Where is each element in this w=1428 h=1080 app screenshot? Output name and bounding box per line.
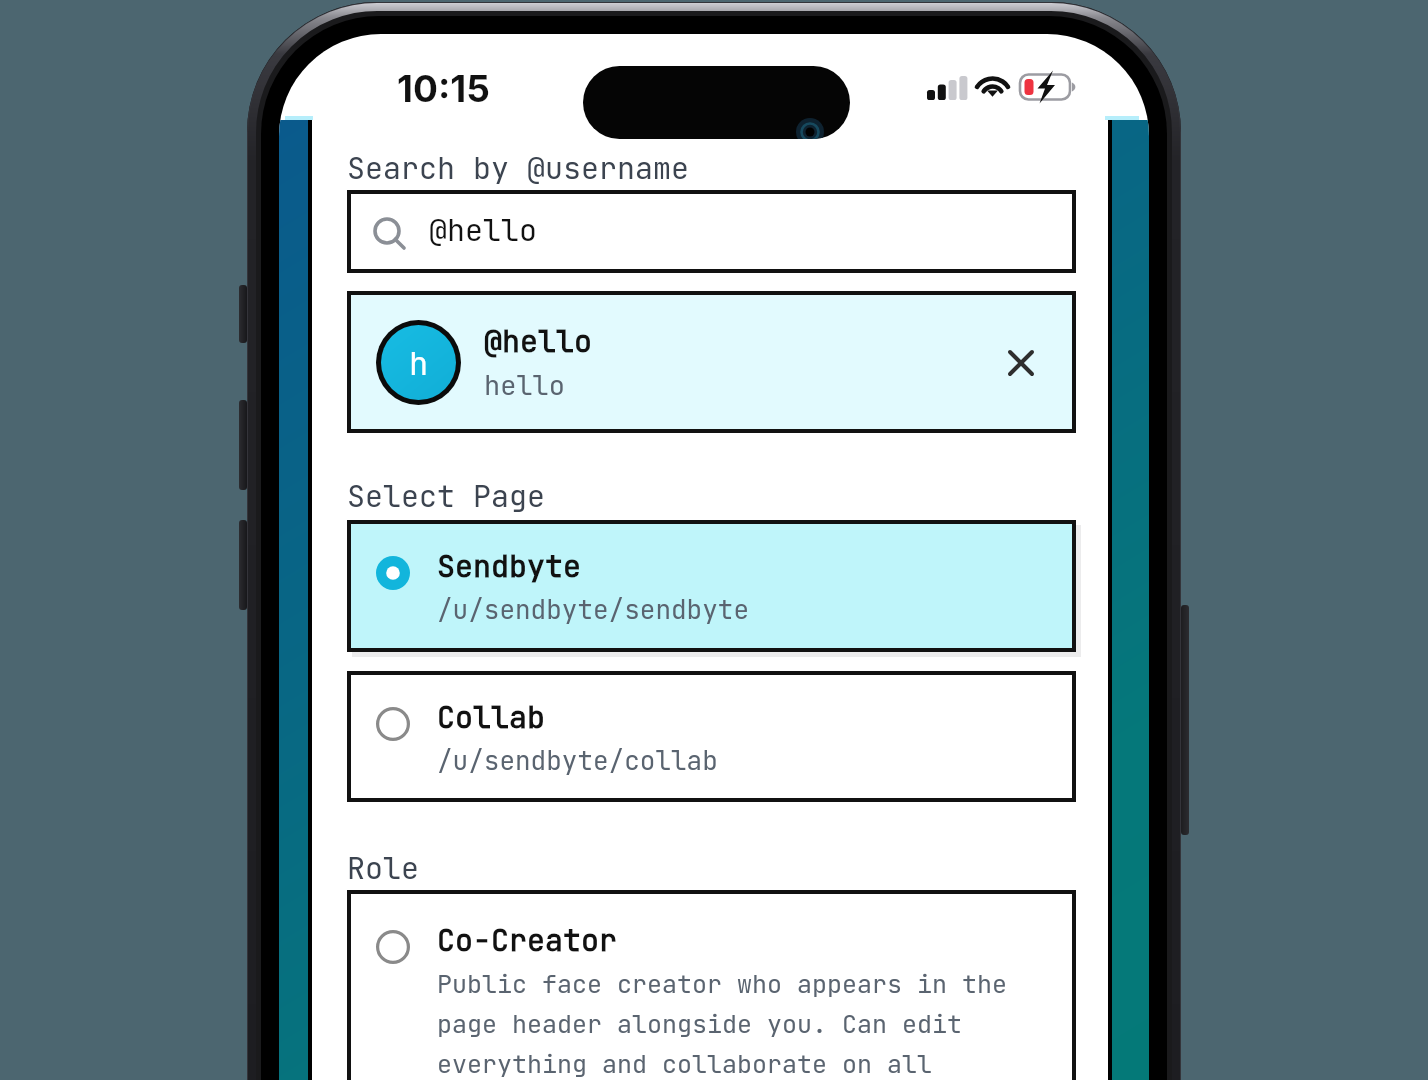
staticText: @hello <box>429 210 537 250</box>
staticText: Co-Creator <box>437 920 617 960</box>
staticText: hello <box>484 367 565 403</box>
button[interactable]: Co-Creator <box>351 894 1072 1080</box>
staticText: Select Page <box>347 476 545 516</box>
staticText: /u/sendbyte/sendbyte <box>437 592 750 626</box>
staticText: Sendbyte <box>437 546 581 586</box>
staticText: Search by @username <box>347 148 689 188</box>
staticText: @hello <box>484 321 592 361</box>
staticText: Collab <box>437 697 545 737</box>
staticText: Role <box>347 848 419 888</box>
button[interactable]: @hello <box>351 194 1072 269</box>
button[interactable]: Clear selection <box>997 339 1045 387</box>
staticText: /u/sendbyte/collab <box>437 743 718 777</box>
button[interactable]: Collab <box>351 675 1072 798</box>
staticText: Public face creator who appears in the p… <box>437 967 1021 1080</box>
staticText: 10:15 <box>397 66 490 111</box>
button[interactable]: h <box>351 295 1072 429</box>
staticText: h <box>409 342 429 384</box>
button[interactable]: Sendbyte <box>351 524 1072 648</box>
